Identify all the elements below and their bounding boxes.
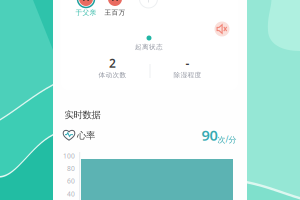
staticText: 80	[67, 164, 75, 173]
staticText: 体动次数	[98, 71, 126, 79]
staticText: 心率	[77, 130, 95, 141]
staticText: 除湿程度	[173, 71, 201, 79]
button[interactable]: 添加成员	[139, 0, 157, 8]
staticText: 次/分	[217, 134, 236, 145]
button[interactable]: 王百万	[106, 0, 123, 7]
staticText: -	[185, 55, 189, 71]
staticText: 王百万	[104, 8, 125, 17]
staticText: 60	[67, 177, 75, 185]
staticText: 90	[201, 125, 217, 145]
staticText: 100	[63, 152, 75, 160]
staticText: 2	[109, 55, 116, 71]
button[interactable]: 于父亲	[77, 0, 94, 7]
staticText: 实时数据	[64, 109, 100, 121]
staticText: 于父亲	[75, 8, 96, 17]
staticText: 起离状态	[135, 43, 163, 51]
button[interactable]: 声音提醒	[212, 19, 232, 39]
staticText: 40	[67, 190, 75, 198]
